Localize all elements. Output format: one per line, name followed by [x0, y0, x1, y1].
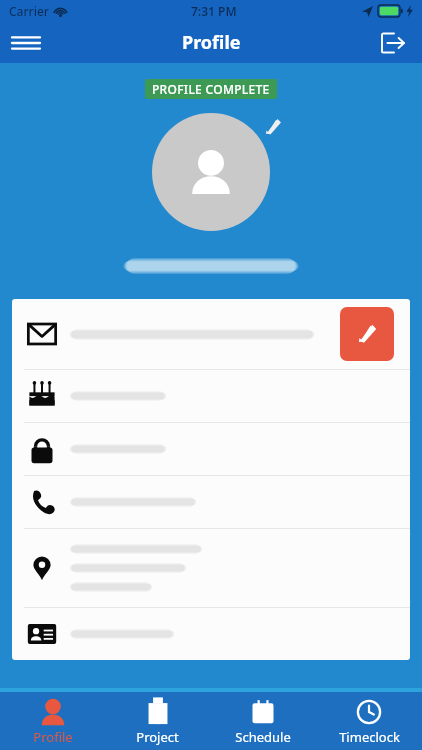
button[interactable]: Profile [0, 692, 105, 750]
button[interactable] [12, 370, 410, 422]
button[interactable] [12, 529, 410, 607]
staticText: Profile [182, 30, 241, 55]
button[interactable] [12, 608, 410, 660]
button[interactable] [12, 476, 410, 528]
button[interactable]: Log out [372, 22, 414, 63]
staticText: PROFILE COMPLETE [152, 81, 270, 97]
button[interactable]: Profile photo [152, 113, 270, 231]
button[interactable] [12, 423, 410, 475]
button[interactable]: Menu [4, 22, 48, 63]
staticText: Profile [33, 728, 73, 746]
staticText: Project [136, 728, 179, 746]
button[interactable]: Timeclock [316, 692, 422, 750]
button[interactable]: Edit email [12, 299, 410, 369]
staticText: Schedule [235, 728, 291, 746]
staticText: Carrier [9, 3, 49, 19]
button[interactable]: Edit photo [259, 113, 287, 141]
staticText: Timeclock [339, 728, 400, 746]
button[interactable]: Edit email [340, 307, 394, 361]
button[interactable]: Project [105, 692, 210, 750]
button[interactable]: Schedule [210, 692, 316, 750]
staticText: 7:31 PM [191, 3, 237, 19]
